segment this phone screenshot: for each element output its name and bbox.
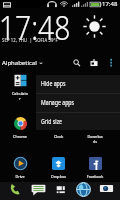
- staticText: 17:48: [0, 5, 70, 50]
- staticText: Manage apps: [41, 99, 74, 107]
- staticText: Facebook: [87, 173, 103, 179]
- button[interactable]: Downloads: [77, 117, 113, 152]
- staticText: Chrome: [13, 133, 27, 139]
- button[interactable]: All apps: [51, 179, 71, 199]
- staticText: Drive: [15, 173, 25, 179]
- button[interactable]: Drive: [2, 157, 38, 181]
- button[interactable]: Dropbox: [40, 157, 76, 181]
- button[interactable]: Phone: [5, 179, 25, 199]
- button[interactable]: Chrome: [2, 117, 38, 141]
- staticText: Downloads: [87, 133, 103, 144]
- button[interactable]: Messages: [28, 179, 48, 199]
- button[interactable]: Store: [86, 55, 101, 70]
- button[interactable]: Alphabetical: [0, 55, 46, 70]
- staticText: Hide apps: [41, 80, 66, 88]
- staticText: Alphabetical: [2, 59, 37, 67]
- button[interactable]: Clock: [40, 117, 76, 141]
- button[interactable]: Manage apps: [36, 94, 120, 112]
- button[interactable]: Browser: [73, 179, 93, 199]
- button[interactable]: Hide apps: [36, 75, 120, 93]
- staticText: Calculator: [12, 90, 28, 101]
- staticText: Dropbox: [51, 173, 66, 179]
- staticText: SEP 12, THU | SOFIA 39°F: [2, 36, 58, 43]
- button[interactable]: Calculator: [2, 74, 38, 109]
- button[interactable]: Camera: [96, 179, 116, 199]
- button[interactable]: More options: [104, 55, 118, 69]
- staticText: Grid size: [41, 118, 62, 126]
- button[interactable]: Grid size: [36, 113, 120, 130]
- staticText: Clock: [54, 133, 63, 139]
- button[interactable]: Search: [69, 55, 84, 70]
- button[interactable]: Facebook: [77, 157, 113, 181]
- staticText: 17:48: [102, 0, 118, 8]
